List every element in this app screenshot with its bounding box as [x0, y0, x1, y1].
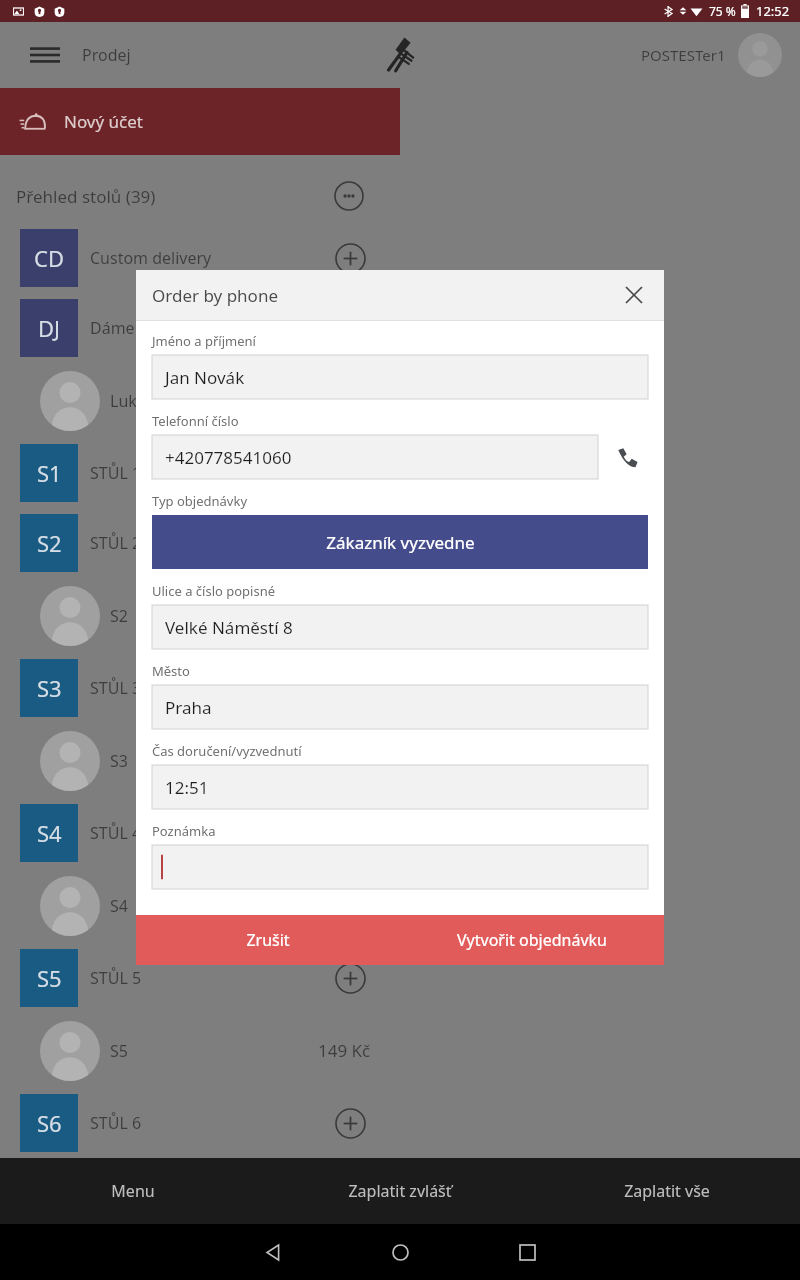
button[interactable]: Close: [614, 275, 654, 315]
staticText: S6: [37, 1108, 62, 1138]
button[interactable]: Menu: [0, 1158, 266, 1224]
button[interactable]: Add order: [330, 813, 370, 853]
staticText: Zaplatit zvlášť: [348, 1180, 452, 1202]
staticText: 12:52: [756, 2, 790, 20]
button[interactable]: Add order: [330, 523, 370, 563]
button[interactable]: Zaplatit vše: [533, 1158, 800, 1224]
staticText: Ulice a číslo popisné: [152, 582, 276, 600]
staticText: 149 Kč: [318, 1039, 371, 1062]
button[interactable]: 12:51: [152, 765, 648, 809]
staticText: Custom delivery: [90, 247, 212, 269]
button[interactable]: S4: [0, 868, 800, 943]
staticText: Order by phone: [152, 284, 278, 307]
staticText: S5: [110, 1040, 128, 1062]
staticText: STŮL 6: [90, 1112, 142, 1134]
staticText: STŮL 3: [90, 677, 142, 699]
button[interactable]: Add order: [330, 308, 370, 348]
staticText: STŮL 1: [90, 462, 142, 484]
staticText: Čas doručení/vyzvednutí: [152, 742, 302, 760]
staticText: Dáme jídlo: [90, 317, 171, 339]
staticText: 75 %: [709, 3, 736, 19]
staticText: S4: [37, 818, 62, 848]
button[interactable]: +420778541060: [152, 435, 598, 479]
staticText: Vytvořit objednávku: [457, 929, 607, 951]
staticText: S2: [110, 605, 128, 627]
staticText: CD: [34, 243, 64, 273]
staticText: Prodej: [82, 44, 131, 66]
button[interactable]: Back: [251, 1230, 295, 1274]
button[interactable]: POSTESTer1: [641, 33, 782, 77]
staticText: Lukáš: [110, 390, 154, 412]
button[interactable]: Menu: [24, 39, 66, 71]
staticText: Jméno a příjmení: [152, 332, 256, 350]
button[interactable]: S2: [0, 508, 800, 578]
staticText: S5: [37, 963, 62, 993]
staticText: STŮL 4: [90, 822, 142, 844]
staticText: Zákazník vyzvedne: [326, 531, 475, 554]
button[interactable]: Nový účet: [0, 88, 400, 155]
button[interactable]: DJ: [0, 293, 800, 363]
staticText: Nový účet: [64, 110, 143, 133]
staticText: S2: [37, 528, 62, 558]
staticText: POSTESTer1: [641, 45, 726, 65]
staticText: Zaplatit vše: [624, 1180, 710, 1202]
staticText: Poznámka: [152, 822, 216, 840]
staticText: +420778541060: [165, 446, 292, 469]
button[interactable]: Lukáš: [0, 363, 800, 438]
button[interactable]: More options: [330, 177, 368, 215]
staticText: Typ objednávky: [152, 492, 248, 510]
staticText: Jan Novák: [165, 366, 245, 389]
button[interactable]: Home: [378, 1230, 422, 1274]
button[interactable]: Velké Náměstí 8: [152, 605, 648, 649]
button[interactable]: Zákazník vyzvedne: [152, 515, 648, 569]
button[interactable]: Add order: [330, 958, 370, 998]
button[interactable]: S2: [0, 578, 800, 653]
button[interactable]: S3: [0, 723, 800, 798]
staticText: S3: [37, 673, 62, 703]
staticText: S4: [110, 895, 128, 917]
button[interactable]: Add order: [330, 453, 370, 493]
staticText: S3: [110, 750, 128, 772]
button[interactable]: Add order: [330, 668, 370, 708]
staticText: Přehled stolů (39): [16, 185, 156, 208]
button[interactable]: Zaplatit zvlášť: [266, 1158, 533, 1224]
button[interactable]: S3: [0, 653, 800, 723]
staticText: Menu: [111, 1180, 155, 1202]
staticText: DJ: [38, 313, 61, 343]
button[interactable]: Add order: [330, 238, 370, 278]
button[interactable]: Praha: [152, 685, 648, 729]
staticText: Telefonní číslo: [152, 412, 239, 430]
staticText: STŮL 2: [90, 532, 142, 554]
button[interactable]: S5: [0, 1013, 800, 1088]
button[interactable]: Recent apps: [505, 1230, 549, 1274]
staticText: S1: [37, 458, 62, 488]
button[interactable]: S6: [0, 1088, 800, 1158]
staticText: 12:51: [165, 776, 209, 799]
staticText: Město: [152, 662, 190, 680]
button[interactable]: Jan Novák: [152, 355, 648, 399]
staticText: Velké Náměstí 8: [165, 616, 293, 639]
staticText: STŮL 5: [90, 967, 142, 989]
staticText: Praha: [165, 696, 212, 719]
staticText: Zrušit: [246, 929, 290, 951]
button[interactable]: S4: [0, 798, 800, 868]
button[interactable]: [152, 845, 648, 889]
button[interactable]: S5: [0, 943, 800, 1013]
button[interactable]: Vytvořit objednávku: [400, 915, 664, 965]
button[interactable]: S1: [0, 438, 800, 508]
button[interactable]: Zrušit: [136, 915, 400, 965]
button[interactable]: Call: [610, 440, 644, 474]
button[interactable]: Add order: [330, 1103, 370, 1143]
button[interactable]: CD: [0, 223, 800, 293]
